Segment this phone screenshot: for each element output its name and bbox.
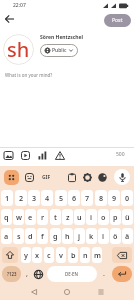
button[interactable]: .	[99, 266, 109, 282]
staticText: ü	[125, 212, 130, 222]
staticText: c	[47, 250, 51, 260]
button[interactable]: z	[62, 209, 73, 225]
button[interactable]: c	[44, 247, 54, 263]
staticText: 9	[112, 193, 117, 203]
button[interactable]: 2	[15, 190, 27, 206]
button[interactable]: 8	[95, 190, 107, 206]
button[interactable]	[96, 171, 109, 184]
button[interactable]: h	[62, 228, 73, 244]
button[interactable]	[61, 286, 73, 298]
button[interactable]: n	[80, 247, 90, 263]
button[interactable]: Post	[104, 14, 131, 27]
staticText: .	[103, 269, 105, 279]
button[interactable]: e	[25, 209, 36, 225]
staticText: 1	[5, 193, 10, 203]
staticText: q	[4, 212, 9, 222]
button[interactable]: p	[110, 209, 121, 225]
button[interactable]: DE·EN	[47, 266, 97, 282]
staticText: z	[66, 212, 70, 222]
staticText: d	[28, 231, 33, 241]
button[interactable]: t	[50, 209, 61, 225]
button[interactable]: s	[13, 228, 24, 244]
button[interactable]	[2, 12, 16, 26]
button[interactable]: 7	[81, 190, 93, 206]
button[interactable]: Public	[40, 44, 78, 57]
staticText: 6	[72, 193, 77, 203]
staticText: Public	[52, 47, 67, 54]
button[interactable]: 5	[55, 190, 67, 206]
staticText: 0	[125, 193, 130, 203]
button[interactable]	[95, 286, 107, 298]
staticText: y	[24, 250, 28, 260]
button[interactable]	[19, 149, 32, 162]
button[interactable]: o	[98, 209, 109, 225]
staticText: a	[4, 231, 9, 241]
button[interactable]: x	[32, 247, 42, 263]
staticText: e	[28, 212, 33, 222]
button[interactable]: ,	[22, 266, 32, 282]
button[interactable]	[32, 266, 45, 282]
button[interactable]: k	[86, 228, 97, 244]
button[interactable]	[112, 266, 132, 282]
staticText: n	[83, 250, 88, 260]
staticText: o	[101, 212, 106, 222]
button[interactable]: 9	[108, 190, 120, 206]
button[interactable]: ö	[110, 228, 121, 244]
button[interactable]: d	[25, 228, 36, 244]
button[interactable]	[2, 247, 18, 263]
button[interactable]: 0	[121, 190, 133, 206]
staticText: h	[65, 231, 70, 241]
button[interactable]	[4, 170, 19, 185]
staticText: ,	[26, 269, 28, 279]
staticText: w	[16, 212, 22, 222]
button[interactable]: l	[98, 228, 109, 244]
button[interactable]: u	[74, 209, 85, 225]
staticText: GIF	[42, 174, 51, 181]
button[interactable]	[114, 169, 130, 185]
staticText: ä	[125, 231, 130, 241]
staticText: 5	[59, 193, 64, 203]
staticText: What is on your mind?	[5, 72, 53, 78]
staticText: g	[53, 231, 58, 241]
button[interactable]: 1	[1, 190, 13, 206]
button[interactable]: b	[68, 247, 78, 263]
button[interactable]	[81, 171, 94, 184]
button[interactable]: j	[74, 228, 85, 244]
button[interactable]: ü	[122, 209, 133, 225]
button[interactable]: g	[50, 228, 61, 244]
button[interactable]: r	[37, 209, 48, 225]
button[interactable]	[28, 286, 40, 298]
staticText: m	[94, 250, 101, 260]
staticText: b	[71, 250, 76, 260]
button[interactable]	[53, 149, 66, 162]
button[interactable]: 4	[41, 190, 53, 206]
button[interactable]	[2, 149, 15, 162]
staticText: ?123	[7, 271, 17, 277]
button[interactable]	[112, 247, 132, 263]
button[interactable]: 6	[68, 190, 80, 206]
button[interactable]: w	[13, 209, 24, 225]
staticText: 8	[99, 193, 104, 203]
staticText: j	[78, 231, 81, 241]
staticText: 4	[45, 193, 50, 203]
staticText: s	[17, 231, 21, 241]
staticText: 22:07	[13, 2, 26, 9]
button[interactable]: q	[1, 209, 12, 225]
button[interactable]: GIF	[39, 171, 53, 184]
button[interactable]	[36, 149, 49, 162]
staticText: r	[41, 212, 45, 222]
button[interactable]: f	[37, 228, 48, 244]
button[interactable]: y	[21, 247, 31, 263]
staticText: k	[89, 231, 94, 241]
button[interactable]: ?123	[2, 266, 21, 282]
button[interactable]: ä	[122, 228, 133, 244]
staticText: Sören Hentzschel	[40, 34, 84, 41]
staticText: Post	[112, 17, 123, 24]
button[interactable]: v	[56, 247, 66, 263]
button[interactable]: a	[1, 228, 12, 244]
button[interactable]: 3	[28, 190, 40, 206]
button[interactable]	[23, 171, 36, 184]
button[interactable]	[65, 171, 78, 184]
button[interactable]: m	[92, 247, 102, 263]
button[interactable]: i	[86, 209, 97, 225]
